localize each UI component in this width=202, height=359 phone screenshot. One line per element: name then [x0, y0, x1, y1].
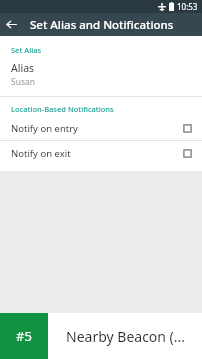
staticText: Set Alias and Notifications [30, 17, 174, 33]
button[interactable]: #5 [0, 313, 202, 359]
button[interactable]: Alias [0, 57, 202, 96]
staticText: Notify on exit [11, 147, 71, 160]
staticText: Notify on entry [11, 122, 78, 135]
staticText: #5 [16, 327, 32, 345]
button[interactable]: Notify on exit [0, 141, 202, 165]
staticText: Nearby Beacon (... [66, 327, 186, 346]
staticText: Susan [11, 76, 36, 88]
button[interactable]: Notify on entry [0, 116, 202, 140]
staticText: Location-Based Notifications [11, 104, 114, 114]
staticText: Set Alias [11, 45, 42, 55]
staticText: 10:53 [177, 1, 198, 12]
staticText: Alias [11, 61, 35, 75]
button[interactable]: Navigate up [0, 13, 23, 36]
